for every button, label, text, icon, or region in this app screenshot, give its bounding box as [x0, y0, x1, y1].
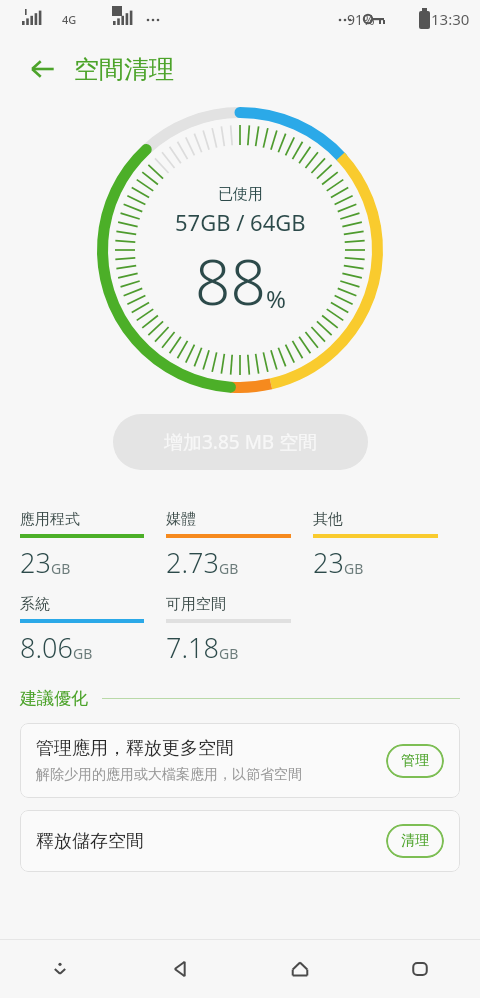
button[interactable]: Back — [120, 940, 240, 998]
staticText: 23 — [20, 544, 51, 581]
button[interactable]: 清理 — [386, 824, 444, 858]
staticText: 解除少用的應用或大檔案應用，以節省空間 — [36, 766, 302, 784]
staticText: GB — [73, 644, 93, 663]
staticText: 空間清理 — [74, 54, 174, 85]
staticText: 媒體 — [166, 510, 196, 529]
staticText: 13:30 — [431, 9, 470, 29]
button[interactable]: Home — [240, 940, 360, 998]
staticText: GB — [51, 559, 71, 578]
button[interactable]: 增加3.85 MB 空間 — [113, 414, 368, 470]
staticText: 增加3.85 MB 空間 — [164, 429, 318, 455]
staticText: 8.06 — [20, 629, 73, 666]
staticText: 應用程式 — [20, 510, 80, 529]
staticText: 釋放儲存空間 — [36, 830, 144, 853]
staticText: % — [266, 282, 286, 315]
staticText: 91% — [347, 10, 375, 29]
staticText: 4G — [62, 12, 77, 27]
staticText: 系統 — [20, 595, 50, 614]
staticText: 7.18 — [166, 629, 219, 666]
staticText: 其他 — [313, 510, 343, 529]
staticText: 清理 — [401, 832, 429, 850]
staticText: GB — [219, 559, 239, 578]
staticText: 管理 — [401, 752, 429, 770]
staticText: 可用空間 — [166, 595, 226, 614]
staticText: 57GB / 64GB — [175, 207, 306, 237]
staticText: 23 — [313, 544, 344, 581]
button[interactable]: Hide navigation bar — [0, 940, 120, 998]
button[interactable]: 釋放儲存空間 — [20, 810, 460, 872]
button[interactable]: 管理應用，釋放更多空間 — [20, 723, 460, 798]
button[interactable]: Back — [20, 47, 64, 91]
staticText: 管理應用，釋放更多空間 — [36, 737, 234, 760]
staticText: 88 — [195, 239, 266, 323]
staticText: GB — [219, 644, 239, 663]
button[interactable]: 管理 — [386, 744, 444, 778]
staticText: 建議優化 — [20, 688, 88, 709]
button[interactable]: Recents — [360, 940, 480, 998]
staticText: 2.73 — [166, 544, 219, 581]
staticText: 已使用 — [218, 185, 263, 204]
staticText: GB — [344, 559, 364, 578]
